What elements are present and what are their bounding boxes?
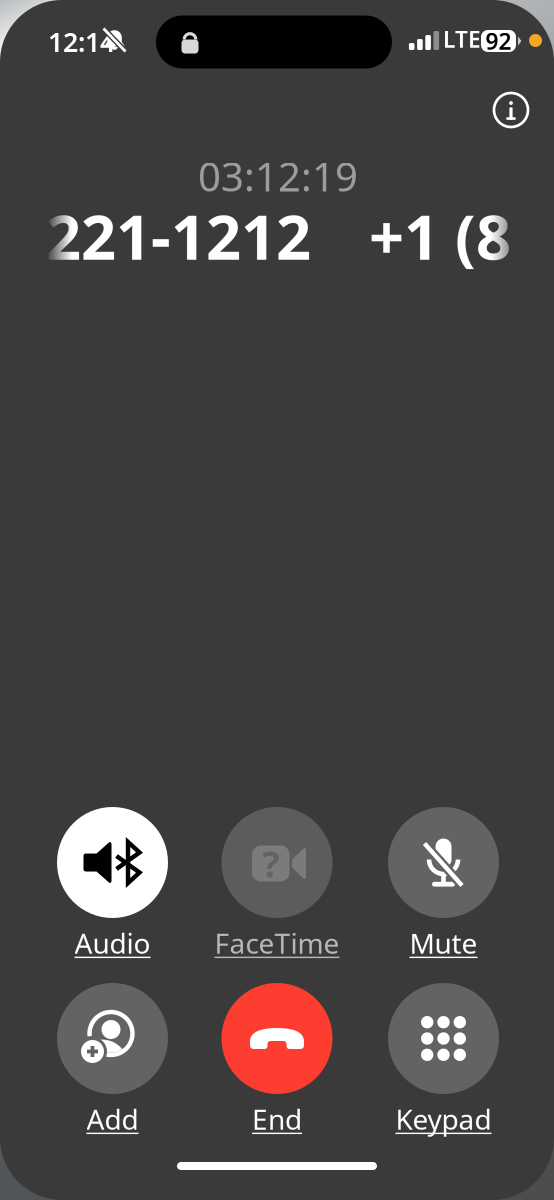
- staticText: 12:14: [48, 24, 115, 59]
- staticText: Keypad: [395, 1100, 491, 1138]
- staticText: Add: [86, 1100, 138, 1138]
- button[interactable]: ?: [194, 807, 359, 958]
- staticText: ?: [262, 840, 279, 887]
- staticText: FaceTime: [214, 924, 339, 962]
- button[interactable]: Mute: [361, 807, 526, 958]
- button[interactable]: End: [194, 983, 359, 1134]
- staticText: 03:12:19: [198, 149, 358, 202]
- button[interactable]: Add: [30, 983, 195, 1134]
- button[interactable]: Call info: [481, 80, 541, 140]
- button[interactable]: Audio: [30, 807, 195, 958]
- staticText: +1 (8: [369, 195, 511, 277]
- staticText: Mute: [409, 924, 477, 962]
- staticText: End: [252, 1100, 302, 1138]
- staticText: 221-1212: [46, 195, 311, 277]
- button[interactable]: Keypad: [361, 983, 526, 1134]
- staticText: Audio: [74, 924, 150, 962]
- staticText: 92: [485, 26, 511, 56]
- staticText: LTE: [443, 24, 481, 54]
